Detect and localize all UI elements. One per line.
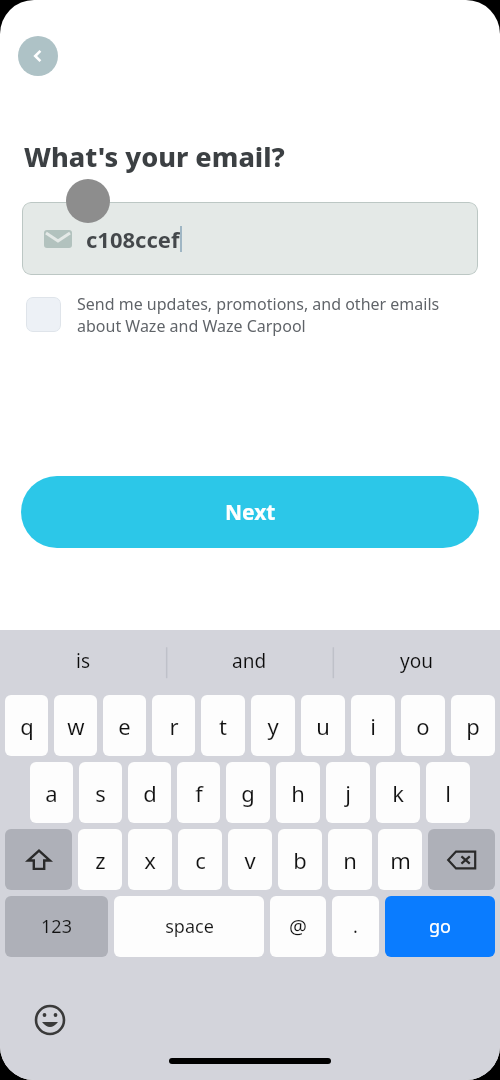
staticText: i	[370, 711, 376, 741]
staticText: j	[345, 778, 351, 808]
button[interactable]: x	[128, 829, 172, 890]
button[interactable]: 123	[5, 896, 108, 957]
button[interactable]: Send me updates, promotions, and other e…	[26, 293, 460, 337]
staticText: @	[289, 913, 307, 940]
staticText: e	[118, 711, 131, 741]
staticText: k	[392, 778, 404, 808]
button[interactable]: q	[5, 695, 48, 756]
button[interactable]: i	[351, 695, 395, 756]
button[interactable]: r	[152, 695, 195, 756]
button[interactable]: Back	[18, 36, 58, 76]
button[interactable]: f	[177, 762, 220, 823]
staticText: Next	[225, 498, 276, 527]
button[interactable]: Emoji	[32, 1002, 68, 1038]
staticText: Send me updates, promotions, and other e…	[77, 293, 460, 337]
button[interactable]: l	[426, 762, 470, 823]
button[interactable]: u	[301, 695, 345, 756]
button[interactable]: go	[385, 896, 495, 957]
staticText: c	[195, 845, 206, 875]
staticText: space	[165, 914, 214, 939]
staticText: go	[429, 914, 451, 939]
button[interactable]: Backspace	[428, 829, 495, 890]
button[interactable]: .	[332, 896, 379, 957]
button[interactable]: p	[451, 695, 495, 756]
button[interactable]: o	[401, 695, 445, 756]
staticText: q	[20, 711, 34, 741]
button[interactable]: @	[270, 896, 326, 957]
staticText: What's your email?	[24, 138, 285, 175]
button[interactable]: Shift	[5, 829, 72, 890]
staticText: you	[400, 648, 433, 674]
button[interactable]: e	[103, 695, 146, 756]
button[interactable]: y	[251, 695, 295, 756]
staticText: c108ccef	[86, 224, 180, 254]
staticText: z	[95, 845, 106, 875]
button[interactable]: h	[276, 762, 320, 823]
button[interactable]: k	[376, 762, 420, 823]
staticText: d	[143, 778, 157, 808]
button[interactable]: n	[328, 829, 372, 890]
staticText: g	[241, 778, 255, 808]
staticText: t	[219, 711, 227, 741]
button[interactable]: g	[226, 762, 270, 823]
staticText: is	[76, 648, 91, 674]
staticText: and	[232, 648, 267, 674]
staticText: h	[291, 778, 305, 808]
staticText: w	[67, 711, 85, 741]
staticText: p	[466, 711, 480, 741]
button[interactable]: t	[201, 695, 245, 756]
button[interactable]: s	[79, 762, 122, 823]
staticText: m	[390, 845, 411, 875]
staticText: l	[445, 778, 451, 808]
button[interactable]: and	[166, 630, 333, 692]
button[interactable]: Next	[21, 476, 479, 548]
staticText: y	[267, 711, 279, 741]
button[interactable]: b	[278, 829, 322, 890]
staticText: r	[169, 711, 179, 741]
button[interactable]: c	[178, 829, 222, 890]
staticText: .	[353, 914, 358, 939]
button[interactable]: c108ccef	[22, 202, 478, 275]
staticText: b	[293, 845, 307, 875]
button[interactable]: is	[0, 630, 166, 692]
staticText: 123	[41, 914, 72, 939]
button[interactable]: a	[30, 762, 73, 823]
staticText: o	[416, 711, 430, 741]
button[interactable]: you	[333, 630, 500, 692]
button[interactable]: z	[78, 829, 122, 890]
staticText: s	[95, 778, 106, 808]
staticText: v	[244, 845, 256, 875]
staticText: a	[45, 778, 58, 808]
staticText: n	[343, 845, 357, 875]
button[interactable]: w	[54, 695, 97, 756]
button[interactable]: m	[378, 829, 422, 890]
staticText: f	[195, 778, 203, 808]
staticText: x	[144, 845, 156, 875]
button[interactable]: v	[228, 829, 272, 890]
button[interactable]: space	[114, 896, 264, 957]
button[interactable]: d	[128, 762, 171, 823]
button[interactable]: j	[326, 762, 370, 823]
staticText: u	[316, 711, 330, 741]
